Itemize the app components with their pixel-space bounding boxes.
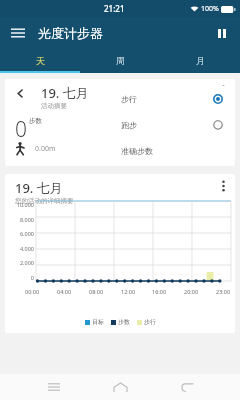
staticText: 19. 七月 (15, 179, 63, 197)
button[interactable]: More options (215, 83, 231, 99)
staticText: 12:00 (121, 288, 136, 295)
button[interactable]: 19. 七月 (5, 174, 235, 333)
staticText: 光度计步器 (38, 25, 103, 41)
staticText: 步数 (118, 318, 130, 326)
button[interactable]: 天 (0, 48, 80, 73)
staticText: 准确步数 (121, 146, 153, 156)
staticText: 天 (36, 55, 45, 66)
staticText: 跑步 (121, 120, 137, 130)
staticText: 0.00m (35, 144, 56, 154)
button[interactable]: 准确步数 (109, 138, 233, 164)
button[interactable]: Previous day (13, 86, 27, 100)
button[interactable]: More options (215, 178, 231, 194)
button[interactable]: Recents (41, 374, 67, 400)
staticText: 目标 (92, 318, 104, 326)
button[interactable]: Pause (212, 23, 232, 43)
staticText: 08:00 (89, 288, 104, 295)
staticText: 20:00 (184, 288, 199, 295)
staticText: 2.000 (19, 259, 34, 266)
staticText: 0 (15, 115, 27, 144)
staticText: 0 (30, 274, 34, 281)
staticText: 您的活动的详细摘要 (15, 197, 74, 205)
staticText: 10.000 (16, 201, 34, 208)
staticText: 月 (196, 55, 205, 66)
staticText: 100% (201, 4, 219, 14)
staticText: 6.000 (19, 230, 34, 237)
staticText: 步行 (121, 94, 137, 104)
staticText: 周 (116, 55, 125, 66)
button[interactable]: Back (174, 374, 200, 400)
staticText: 23:00 (216, 288, 231, 295)
staticText: 8.000 (19, 216, 34, 223)
button[interactable]: Previous day (5, 79, 235, 166)
button[interactable]: 周 (80, 48, 160, 73)
button[interactable]: 跑步 (109, 112, 233, 138)
button[interactable]: Menu (7, 22, 29, 44)
staticText: 4.000 (19, 245, 34, 252)
staticText: 步数 (29, 117, 42, 125)
staticText: 19. 七月 (41, 84, 89, 102)
staticText: 04:00 (57, 288, 72, 295)
button[interactable]: Home (107, 374, 133, 400)
button[interactable]: 步行 (109, 86, 233, 112)
staticText: 21:21 (104, 3, 125, 14)
staticText: 步行 (144, 318, 156, 326)
staticText: 16:00 (152, 288, 167, 295)
button[interactable]: 月 (160, 48, 240, 73)
staticText: 活动摘要 (41, 102, 67, 110)
staticText: 00:00 (25, 288, 40, 295)
